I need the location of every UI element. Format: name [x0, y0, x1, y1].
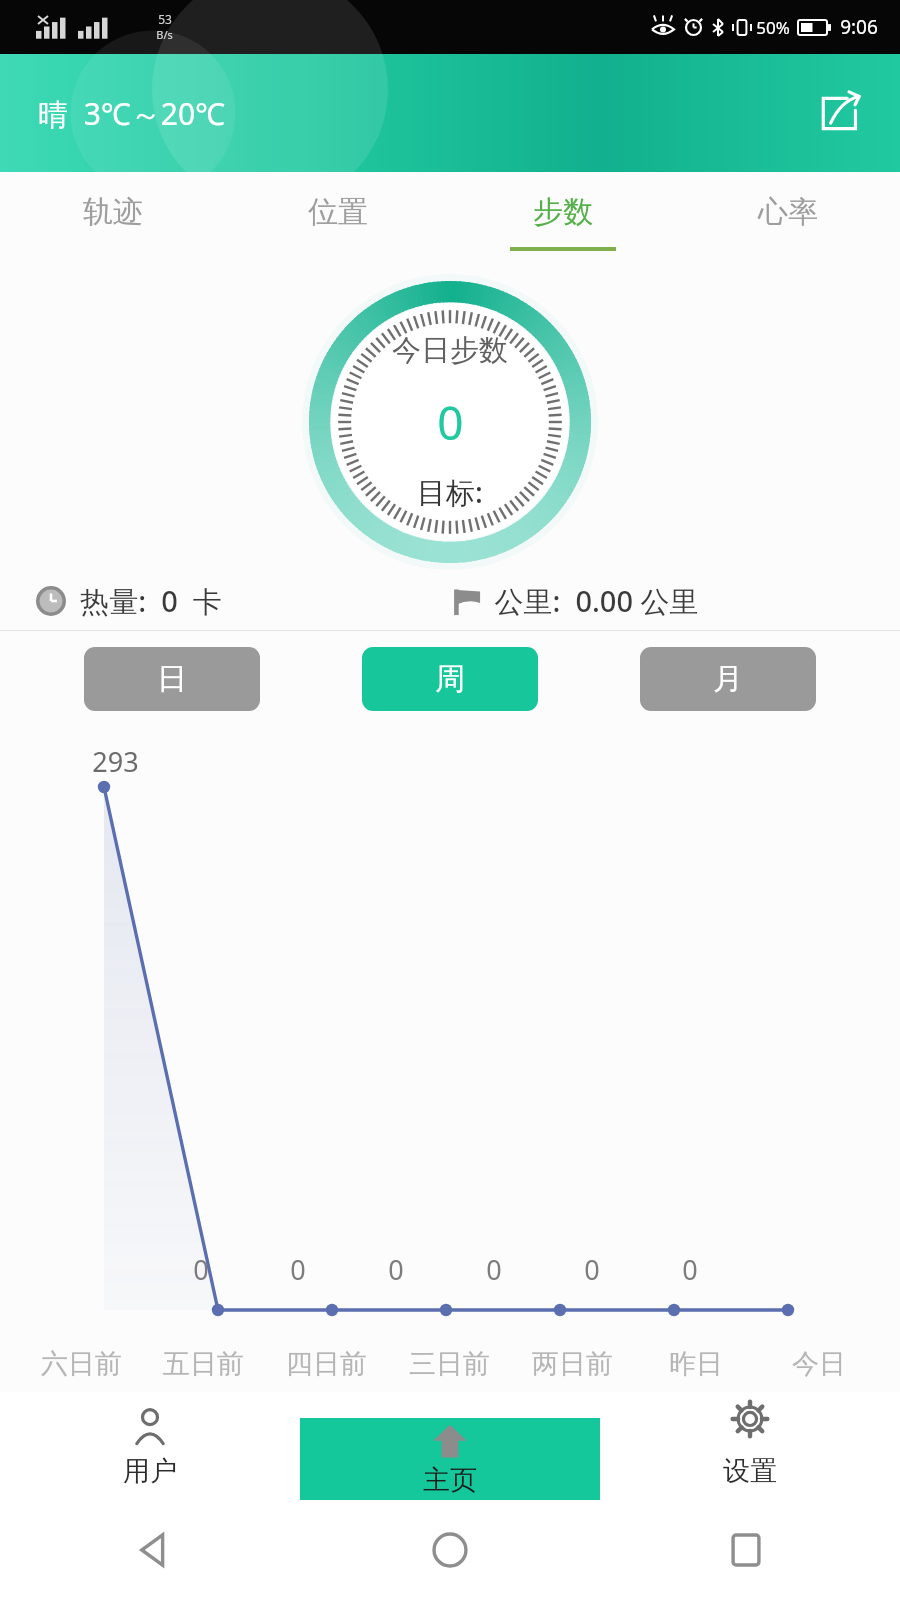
button[interactable]: 步数: [450, 172, 675, 272]
button[interactable]: Back: [118, 1514, 190, 1586]
staticText: 两日前: [532, 1347, 613, 1381]
staticText: 步数: [533, 193, 593, 231]
staticText: 热量: 0 卡: [80, 581, 222, 621]
staticText: 今日: [792, 1347, 846, 1381]
staticText: 设置: [723, 1454, 777, 1488]
staticText: 53: [158, 11, 172, 27]
staticText: 0: [682, 1251, 698, 1288]
staticText: 9:06: [840, 14, 878, 40]
button[interactable]: 设置: [600, 1392, 900, 1500]
staticText: 今日步数: [392, 332, 508, 369]
staticText: 日: [157, 660, 187, 698]
staticText: 公里: 0.00 公里: [494, 581, 699, 621]
staticText: 晴 3℃～20℃: [38, 93, 225, 134]
staticText: 0: [388, 1251, 404, 1288]
staticText: 0: [437, 391, 464, 454]
staticText: 0: [193, 1251, 209, 1288]
button[interactable]: 周: [362, 647, 538, 711]
staticText: 三日前: [409, 1347, 490, 1381]
staticText: B/s: [156, 27, 173, 42]
staticText: 0: [486, 1251, 502, 1288]
staticText: 周: [435, 660, 465, 698]
staticText: 四日前: [286, 1347, 367, 1381]
staticText: 0: [584, 1251, 600, 1288]
button[interactable]: 心率: [675, 172, 900, 272]
staticText: 昨日: [669, 1347, 723, 1381]
staticText: 目标:: [417, 472, 483, 512]
staticText: 50%: [756, 16, 790, 39]
staticText: 五日前: [163, 1347, 244, 1381]
button[interactable]: 日: [84, 647, 260, 711]
button[interactable]: 月: [640, 647, 816, 711]
button[interactable]: 轨迹: [0, 172, 225, 272]
staticText: 位置: [308, 193, 368, 231]
staticText: 0: [290, 1251, 306, 1288]
button[interactable]: Share: [808, 83, 868, 143]
staticText: 用户: [123, 1454, 177, 1488]
button[interactable]: 主页: [300, 1418, 600, 1500]
staticText: 主页: [423, 1463, 477, 1497]
button[interactable]: Recent apps: [710, 1514, 782, 1586]
staticText: 心率: [758, 193, 818, 231]
staticText: 月: [713, 660, 743, 698]
button[interactable]: Home: [414, 1514, 486, 1586]
button[interactable]: 用户: [0, 1392, 300, 1500]
staticText: 六日前: [41, 1347, 122, 1381]
staticText: 293: [92, 743, 139, 780]
button[interactable]: 位置: [225, 172, 450, 272]
staticText: 轨迹: [83, 193, 143, 231]
